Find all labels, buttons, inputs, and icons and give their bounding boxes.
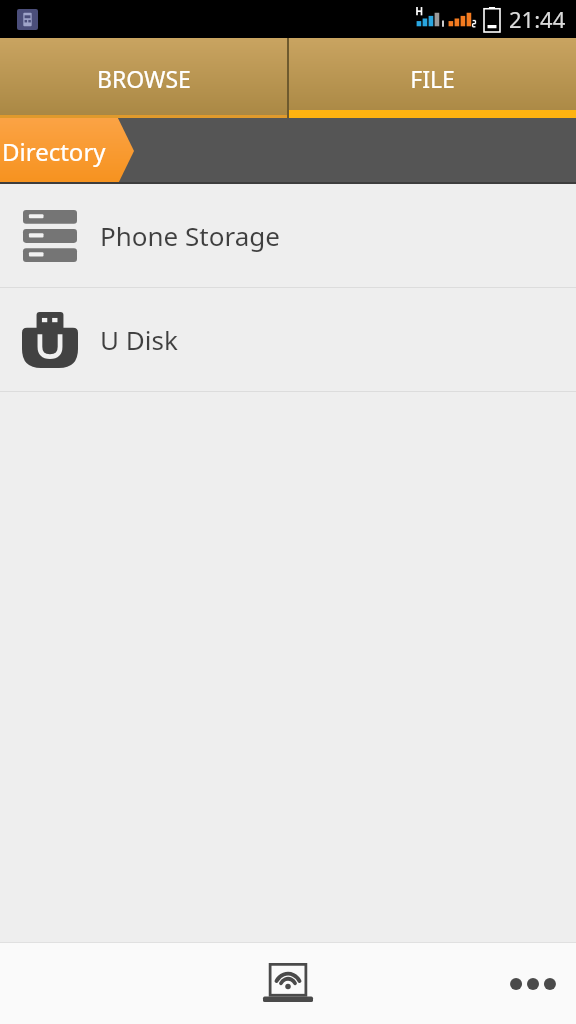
button[interactable] <box>0 118 134 184</box>
button[interactable]: U Disk <box>0 288 576 391</box>
staticText: Phone Storage <box>100 218 280 253</box>
staticText: FILE <box>410 63 455 94</box>
staticText: Directory <box>2 135 106 168</box>
staticText: BROWSE <box>97 63 191 94</box>
button[interactable]: Connect to computer <box>256 952 320 1016</box>
button[interactable]: Phone Storage <box>0 184 576 287</box>
staticText: 21:44 <box>509 4 566 34</box>
staticText: U Disk <box>100 322 178 357</box>
button[interactable]: BROWSE <box>0 38 287 118</box>
button[interactable]: More options <box>502 953 564 1015</box>
button[interactable]: FILE <box>289 38 576 118</box>
